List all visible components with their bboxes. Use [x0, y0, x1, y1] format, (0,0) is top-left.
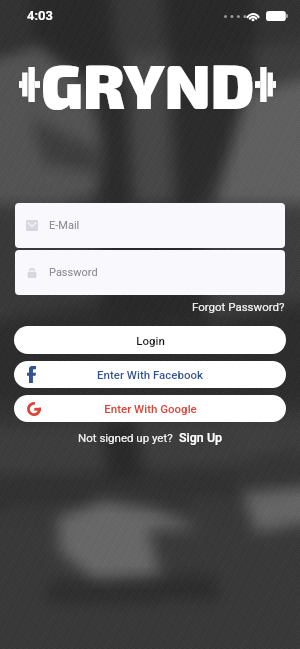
- staticText: E-Mail: [49, 219, 80, 232]
- staticText: Password: [49, 266, 98, 279]
- button[interactable]: E-Mail: [15, 203, 285, 248]
- button[interactable]: Enter With Facebook: [14, 361, 286, 388]
- button[interactable]: Forgot Password?: [192, 299, 300, 315]
- staticText: Sign Up: [179, 430, 223, 445]
- button[interactable]: Sign Up: [179, 430, 223, 445]
- staticText: Login: [136, 334, 165, 347]
- staticText: Forgot Password?: [192, 300, 285, 313]
- button[interactable]: Login: [14, 326, 286, 354]
- button[interactable]: Enter With Google: [14, 395, 286, 422]
- staticText: 4:03: [27, 8, 53, 23]
- staticText: Not signed up yet?: [78, 431, 173, 444]
- staticText: Enter With Facebook: [97, 368, 203, 381]
- button[interactable]: Password: [15, 250, 285, 295]
- staticText: GRYND: [41, 47, 255, 122]
- staticText: Enter With Google: [104, 402, 197, 415]
